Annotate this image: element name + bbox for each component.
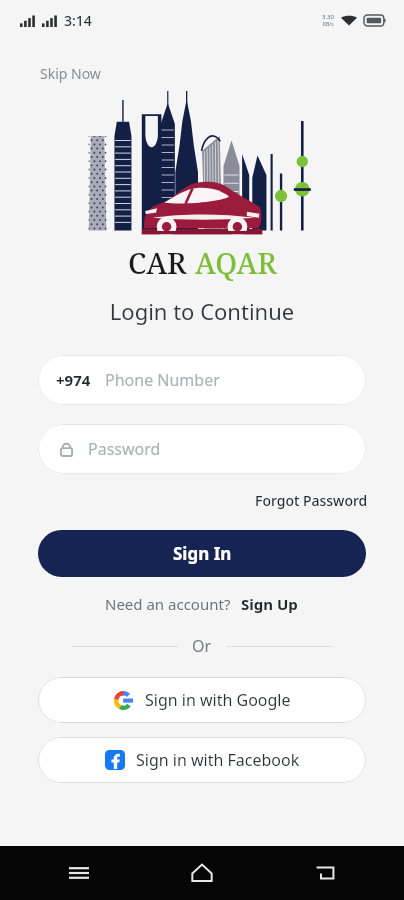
staticText: Password [88,438,161,460]
button[interactable]: Recent apps [58,852,100,894]
staticText: Skip Now [40,64,101,83]
staticText: AQAR [195,243,277,282]
button[interactable]: Sign in with Facebook [38,737,366,783]
staticText: Need an account? [105,594,231,614]
staticText: 3:14 [64,11,92,30]
staticText: Login to Continue [0,296,404,326]
staticText: Phone Number [105,369,220,391]
button[interactable]: Sign in with Google [38,677,366,723]
staticText: Forgot Password [255,491,368,510]
button[interactable]: Sign In [38,530,366,577]
staticText: +974 [56,370,91,390]
staticText: Sign Up [241,594,298,614]
staticText: CAR [128,243,195,282]
staticText: 3.30 [322,13,334,21]
button[interactable]: Skip Now [38,62,103,85]
staticText: KB/s [323,21,334,28]
button[interactable]: Sign Up [239,592,300,616]
staticText: Sign in with Google [145,689,291,711]
staticText: Sign In [173,542,232,565]
button[interactable]: Password [38,424,366,474]
button[interactable]: Forgot Password [253,489,370,512]
button[interactable]: +974 [38,355,366,405]
staticText: Or [192,635,212,657]
button[interactable]: Home [181,852,223,894]
button[interactable]: Back [304,852,346,894]
staticText: Sign in with Facebook [136,749,300,771]
